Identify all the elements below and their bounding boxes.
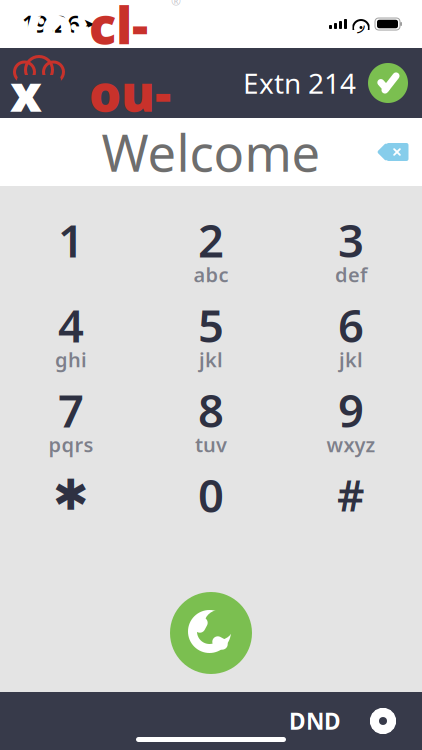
staticText: jkl <box>199 346 223 373</box>
button[interactable]: 3 <box>281 204 421 289</box>
button[interactable]: 2 <box>141 204 281 289</box>
staticText: 0 <box>198 465 224 525</box>
button[interactable]: Extn 214 <box>243 63 422 103</box>
button[interactable]: Call <box>170 592 252 674</box>
staticText: pqrs <box>48 431 93 458</box>
staticText: jkl <box>339 346 363 373</box>
staticText: 5 <box>198 295 224 355</box>
staticText: Extn 214 <box>243 64 356 102</box>
staticText: Welcome <box>101 118 320 186</box>
staticText: 6 <box>338 295 364 355</box>
button[interactable]: 8 <box>141 374 281 459</box>
staticText: tuv <box>195 431 227 458</box>
staticText: 8 <box>198 380 224 440</box>
staticText: 2 <box>198 210 224 270</box>
button[interactable]: DND <box>278 693 352 749</box>
staticText: cloud <box>89 0 171 193</box>
staticText: 4 <box>58 295 84 355</box>
button[interactable]: Settings <box>352 693 414 749</box>
button[interactable]: ✱ <box>1 459 141 544</box>
staticText: 7 <box>58 380 84 440</box>
staticText: DND <box>289 706 341 736</box>
button[interactable]: 9 <box>281 374 421 459</box>
staticText: 3 <box>338 210 364 270</box>
button[interactable]: 5 <box>141 289 281 374</box>
button[interactable]: Delete <box>366 124 422 180</box>
staticText: abc <box>193 261 228 288</box>
staticText: 1 <box>58 210 84 270</box>
button[interactable]: 4 <box>1 289 141 374</box>
button[interactable]: 1 <box>1 204 141 289</box>
staticText: ➤ <box>83 16 95 32</box>
staticText: def <box>335 261 367 288</box>
staticText: vox <box>10 0 89 126</box>
staticText: 9 <box>338 380 364 440</box>
staticText: ghi <box>55 346 87 373</box>
button[interactable]: # <box>281 459 421 544</box>
button[interactable]: 7 <box>1 374 141 459</box>
staticText: 19:26 <box>22 9 80 39</box>
button[interactable]: 0 <box>141 459 281 544</box>
staticText: ✱ <box>53 471 89 519</box>
staticText: ® <box>171 0 181 9</box>
button[interactable]: 6 <box>281 289 421 374</box>
staticText: # <box>337 467 365 523</box>
staticText: ◞ <box>357 13 365 35</box>
staticText: wxyz <box>326 431 375 458</box>
